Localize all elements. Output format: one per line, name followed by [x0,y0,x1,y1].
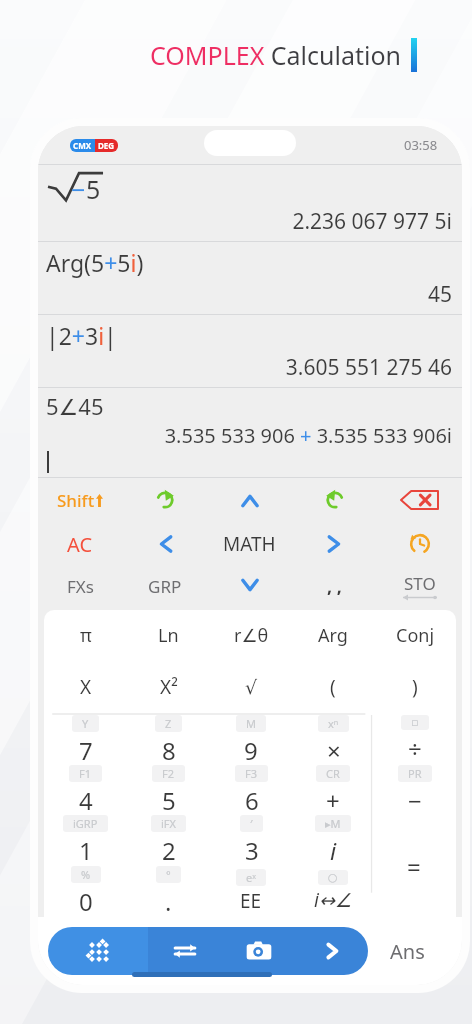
staticText: 3 [245,834,259,866]
staticText: 45 [46,280,452,309]
button[interactable]: Up [207,478,292,522]
button[interactable]: History [377,522,462,566]
staticText: DEG [98,140,115,151]
button[interactable]: Comma [292,566,377,606]
staticText: 5 [162,784,176,815]
staticText: Arg [318,623,348,648]
button[interactable]: ( [292,661,374,712]
button[interactable]: Z [127,715,210,765]
staticText: M [246,716,256,731]
button[interactable]: ▸M [292,815,374,866]
button[interactable]: X [44,661,127,712]
button[interactable]: Next [295,927,368,975]
staticText: Ans [390,938,425,965]
button[interactable]: iFX [127,815,210,866]
button[interactable]: ▫ [374,715,456,765]
button[interactable]: MATH [207,522,292,566]
staticText: 7 [79,734,93,765]
button[interactable]: % [44,866,127,917]
button[interactable]: Ln [127,610,210,661]
button[interactable]: xⁿ [292,715,374,765]
staticText: F2 [162,766,175,781]
staticText: 3.535 533 906 + 3.535 533 906i [46,422,452,449]
staticText: % [81,867,91,882]
staticText: F3 [245,766,258,781]
button[interactable]: π [44,610,127,661]
button[interactable]: Ans [390,938,425,965]
button[interactable]: AC [38,522,122,566]
staticText: PR [408,766,422,781]
staticText: 2 [162,834,176,866]
staticText: i [330,834,337,866]
staticText: 03:58 [404,136,438,154]
staticText: π [80,623,92,648]
button[interactable]: F1 [44,765,127,815]
staticText: ′ [250,816,253,831]
staticText: X [80,674,92,700]
staticText: CMX [73,140,92,151]
button[interactable]: GRP [122,566,207,606]
staticText: |2+3i| [46,320,117,351]
staticText: X² [160,674,178,700]
button[interactable]: Arg [292,610,374,661]
button[interactable]: Keypad [48,927,148,975]
staticText: i↔∠ [314,887,352,913]
button[interactable]: FXs [38,566,122,606]
button[interactable]: M [210,715,292,765]
button[interactable]: Swap [148,927,222,975]
staticText: iGRP [73,816,98,831]
staticText: 3.605 551 275 46 [46,353,452,382]
staticText: + [326,784,340,815]
staticText: 5 [86,172,101,206]
staticText: Shift [57,489,95,512]
staticText: xⁿ [328,716,339,731]
button[interactable]: Down [207,566,292,606]
button[interactable]: r∠θ [210,610,292,661]
staticText: ) [412,674,418,700]
button[interactable]: √ [210,661,292,712]
staticText: FXs [67,575,94,598]
staticText: − [408,784,422,815]
staticText: CR [326,766,340,781]
staticText: ○ [328,871,338,884]
staticText: 9 [244,734,258,765]
staticText: 8 [162,734,176,765]
button[interactable]: STO [377,566,462,606]
staticText: F1 [79,766,92,781]
button[interactable]: Equals [372,816,456,917]
staticText: Conj [396,623,435,648]
button[interactable]: Shift [38,478,122,522]
staticText: STO [404,572,436,595]
staticText: EE [240,888,262,914]
staticText: = [407,850,421,883]
button[interactable]: F2 [127,765,210,815]
staticText: 6 [245,784,259,815]
button[interactable]: Left [122,522,207,566]
staticText: Arg(5+5i) [46,247,144,278]
button[interactable]: Y [44,715,127,765]
button[interactable]: iGRP [44,815,127,866]
button[interactable]: Undo [292,478,377,522]
staticText: 5∠45 [46,391,104,421]
button[interactable]: X² [127,661,210,712]
button[interactable]: ° [127,866,210,917]
button[interactable]: Delete [377,478,462,522]
staticText: AC [67,531,93,558]
button[interactable]: ○ [292,866,374,917]
staticText: 0 [79,885,93,917]
staticText: . [165,885,172,917]
staticText: 1 [79,834,93,866]
staticText: √ [245,676,258,698]
button[interactable]: Right [292,522,377,566]
staticText: × [327,734,341,765]
button[interactable]: eˣ [210,866,292,917]
button[interactable]: ′ [210,815,292,866]
button[interactable]: Redo [122,478,207,522]
staticText: Z [165,716,172,731]
button[interactable]: Camera [222,927,295,975]
button[interactable]: Conj [374,610,456,661]
button[interactable]: CR [292,765,374,815]
button[interactable]: ) [374,661,456,712]
button[interactable]: PR [374,765,456,815]
button[interactable]: F3 [210,765,292,815]
